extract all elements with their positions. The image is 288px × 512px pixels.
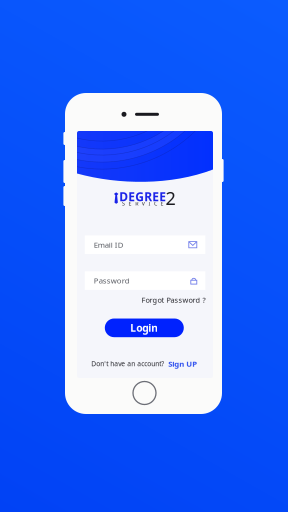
staticText: Sign UP [168, 358, 197, 369]
staticText: Don't have an account? [91, 359, 164, 368]
staticText: Forgot Password ? [141, 295, 205, 305]
staticText: 2 [166, 186, 176, 210]
staticText: Login [130, 321, 158, 335]
button[interactable]: Login [105, 318, 184, 337]
staticText: SERVICE [122, 200, 164, 207]
button[interactable]: Forgot Password ? [139, 295, 205, 305]
staticText: Email ID [94, 239, 124, 250]
staticText: DEGREE [119, 188, 166, 205]
button[interactable]: Sign UP [168, 358, 197, 369]
staticText: Password [94, 275, 130, 286]
